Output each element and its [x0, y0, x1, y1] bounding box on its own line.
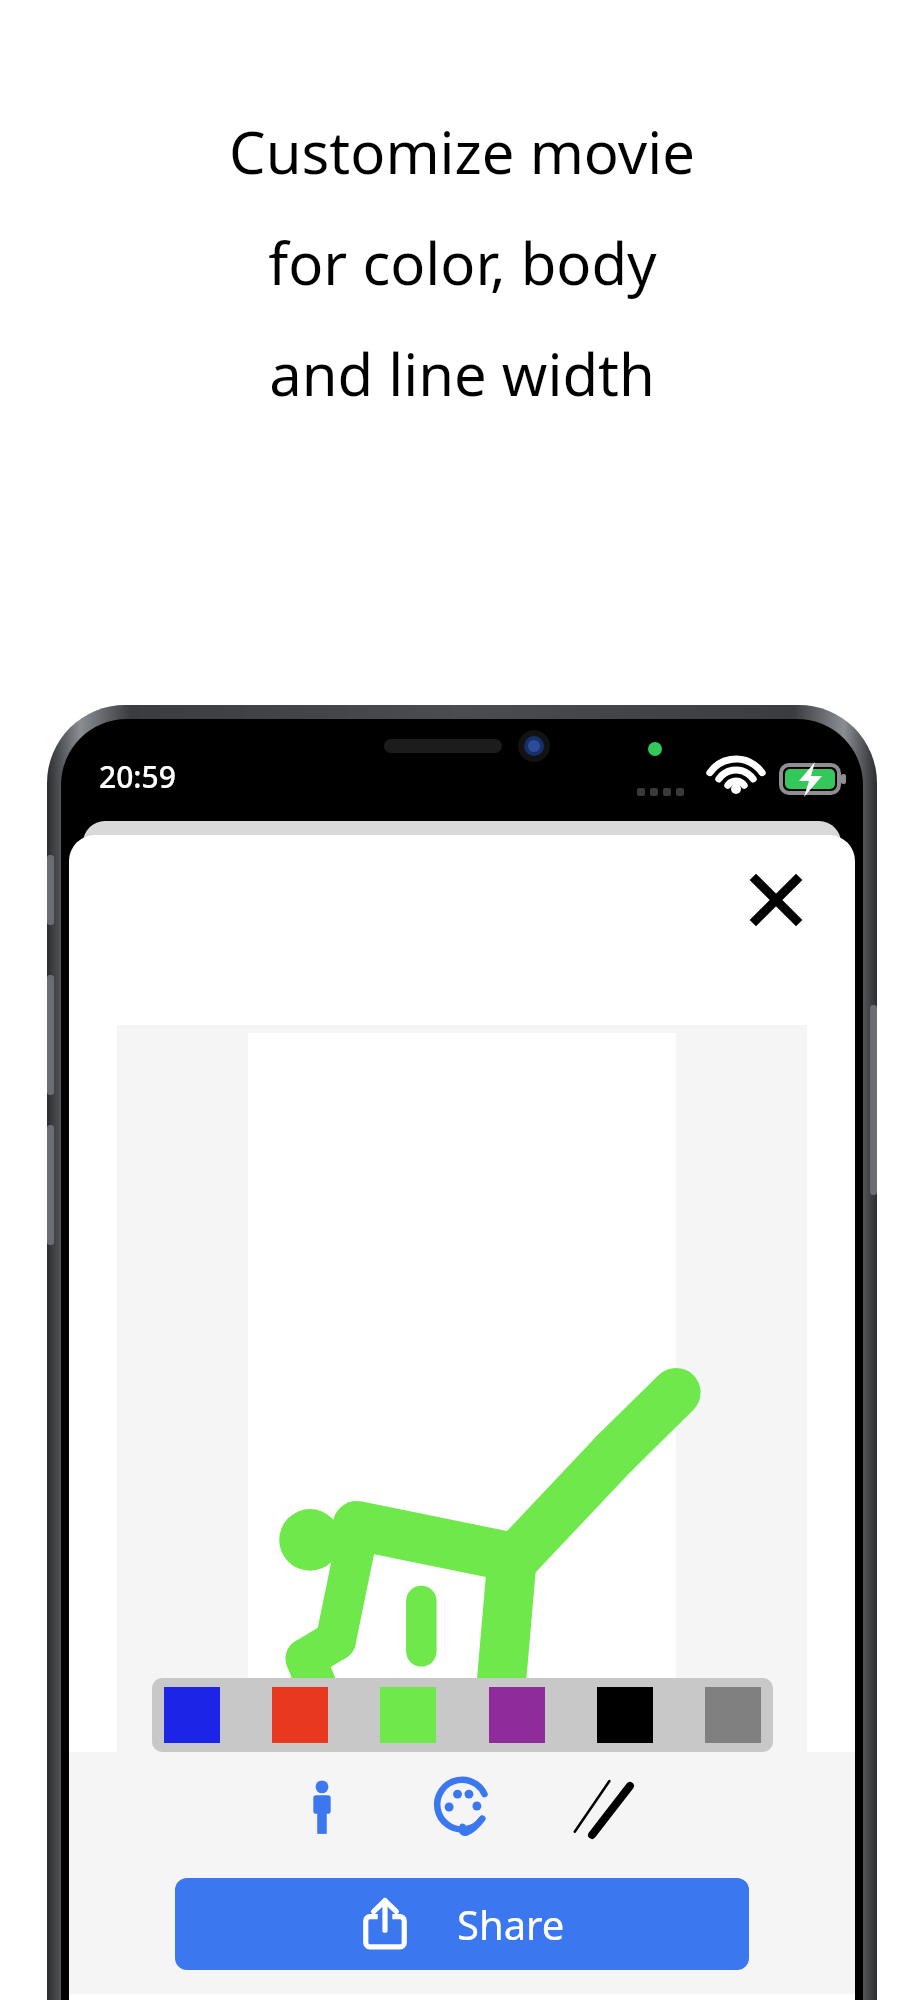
staticText: and line width: [269, 334, 655, 413]
button[interactable]: Body style: [274, 1759, 370, 1855]
button[interactable]: Share: [175, 1878, 749, 1970]
staticText: Share: [457, 1897, 565, 1951]
staticText: Customize movie: [229, 112, 695, 191]
button[interactable]: Color palette: [414, 1759, 510, 1855]
button[interactable]: Line width: [554, 1759, 650, 1855]
staticText: #iPictogram: [213, 1700, 420, 1746]
staticText: for color, body: [268, 223, 657, 302]
staticText: 20:59: [99, 756, 176, 797]
button[interactable]: Close: [741, 865, 811, 935]
